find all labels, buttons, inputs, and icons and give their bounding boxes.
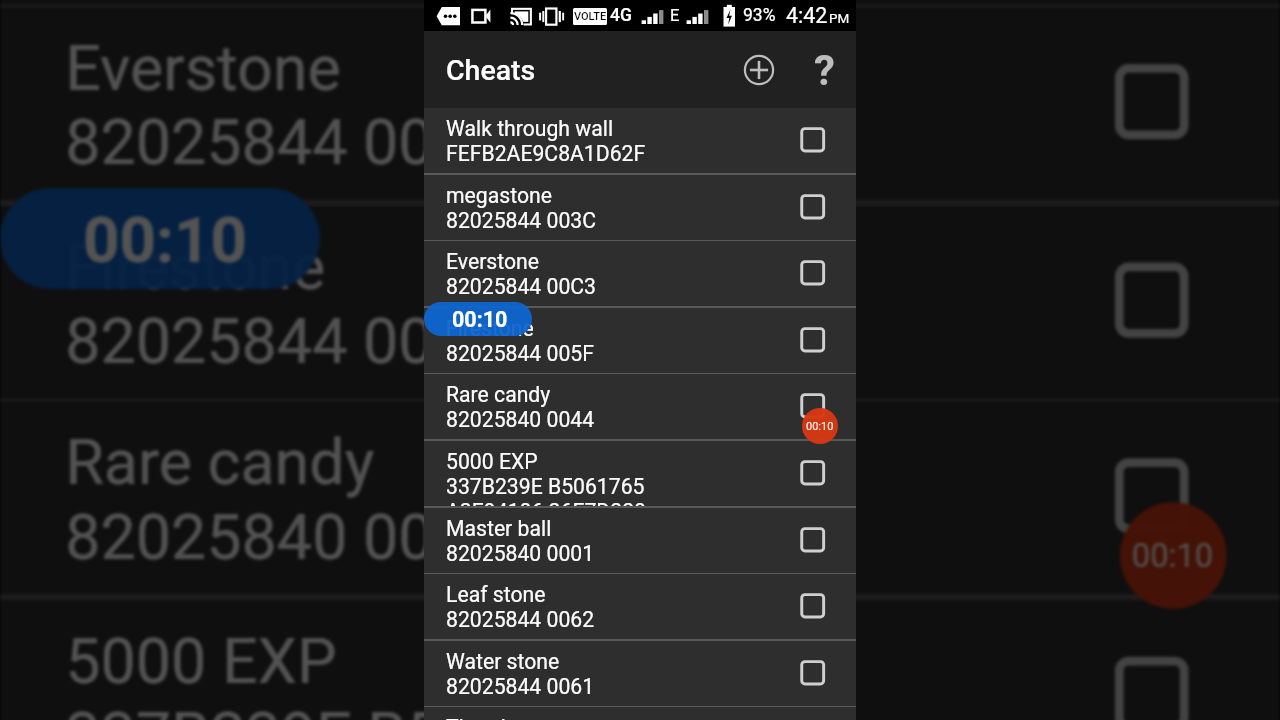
staticText: VOLTE xyxy=(574,10,607,23)
staticText: 5000 EXP 337B239E B5061765 A3E94106 26E7… xyxy=(65,624,658,720)
staticText: 00:10 xyxy=(806,420,834,433)
button[interactable]: Help xyxy=(802,46,846,90)
staticText: Walk through wall FEFB2AE9C8A1D62F xyxy=(446,116,646,166)
button[interactable]: Toggle Everstone xyxy=(1099,49,1206,156)
button[interactable]: Toggle Water stone xyxy=(795,655,831,691)
staticText: Water stone 82025844 0061 xyxy=(446,649,595,699)
staticText: Master ball 82025840 0001 xyxy=(446,516,595,566)
button[interactable]: Toggle megastone xyxy=(795,189,831,225)
button[interactable]: Walk through wall FEFB2AE9C8A1D62F xyxy=(424,108,856,175)
staticText: Cheats xyxy=(446,54,536,87)
button[interactable]: Toggle Rare candy xyxy=(1099,443,1206,550)
staticText: PM xyxy=(829,10,850,26)
staticText: 00:10 xyxy=(83,203,249,277)
button[interactable]: 5000 EXP 337B239E B5061765 A3E94106 26E7… xyxy=(0,600,1280,720)
staticText: megastone 82025844 003C xyxy=(446,183,597,233)
staticText: Thunder stone 82025844 0060 xyxy=(446,715,595,720)
button[interactable]: Everstone 82025844 00C3 xyxy=(0,7,1280,206)
staticText: Firestone 82025844 005F xyxy=(65,230,504,378)
button[interactable]: Toggle Firestone xyxy=(795,322,831,358)
button[interactable]: Rare candy 82025840 0044 xyxy=(0,401,1280,600)
staticText: Leaf stone 82025844 0062 xyxy=(446,582,595,632)
button[interactable]: Everstone 82025844 00C3 xyxy=(424,241,856,308)
button[interactable]: Rare candy 82025840 0044 xyxy=(424,374,856,441)
staticText: Firestone 82025844 005F xyxy=(446,316,594,366)
staticText: Everstone 82025844 00C3 xyxy=(446,249,597,299)
staticText: 00:10 xyxy=(452,307,508,332)
button[interactable]: Add cheat xyxy=(737,48,781,92)
button[interactable]: Water stone 82025844 0061 xyxy=(424,641,856,708)
staticText: 5000 EXP 337B239E B5061765 A3E94106 26E7… xyxy=(446,449,646,508)
button[interactable]: Toggle Everstone xyxy=(795,255,831,291)
button[interactable]: Toggle Walk through wall xyxy=(795,122,831,158)
staticText: ? xyxy=(814,46,835,90)
button[interactable]: Master ball 82025840 0001 xyxy=(424,508,856,575)
staticText: 4:42 xyxy=(786,3,828,28)
button[interactable]: Toggle Master ball xyxy=(795,522,831,558)
staticText: 93% xyxy=(743,5,776,26)
staticText: Rare candy 82025840 0044 xyxy=(65,425,507,573)
button[interactable]: Toggle Firestone xyxy=(1099,247,1206,354)
staticText: E xyxy=(670,6,680,25)
button[interactable]: megastone 82025844 003C xyxy=(424,175,856,242)
staticText: 4G xyxy=(610,5,632,26)
button[interactable]: Thunder stone 82025844 0060 xyxy=(424,707,856,720)
button[interactable]: Firestone 82025844 005F xyxy=(0,206,1280,404)
staticText: Everstone 82025844 00C3 xyxy=(65,31,513,179)
button[interactable]: Leaf stone 82025844 0062 xyxy=(424,574,856,641)
staticText: Rare candy 82025840 0044 xyxy=(446,382,595,432)
button[interactable]: Toggle Rare candy xyxy=(795,388,831,424)
button[interactable]: Toggle 5000 EXP xyxy=(1099,641,1206,720)
button[interactable]: Toggle Leaf stone xyxy=(795,588,831,624)
button[interactable]: Toggle 5000 EXP xyxy=(795,455,831,491)
button[interactable]: megastone 82025844 003C xyxy=(0,0,1280,10)
button[interactable]: 5000 EXP 337B239E B5061765 A3E94106 26E7… xyxy=(424,441,856,508)
staticText: 00:10 xyxy=(1132,538,1215,576)
button[interactable]: Firestone 82025844 005F xyxy=(424,308,856,375)
